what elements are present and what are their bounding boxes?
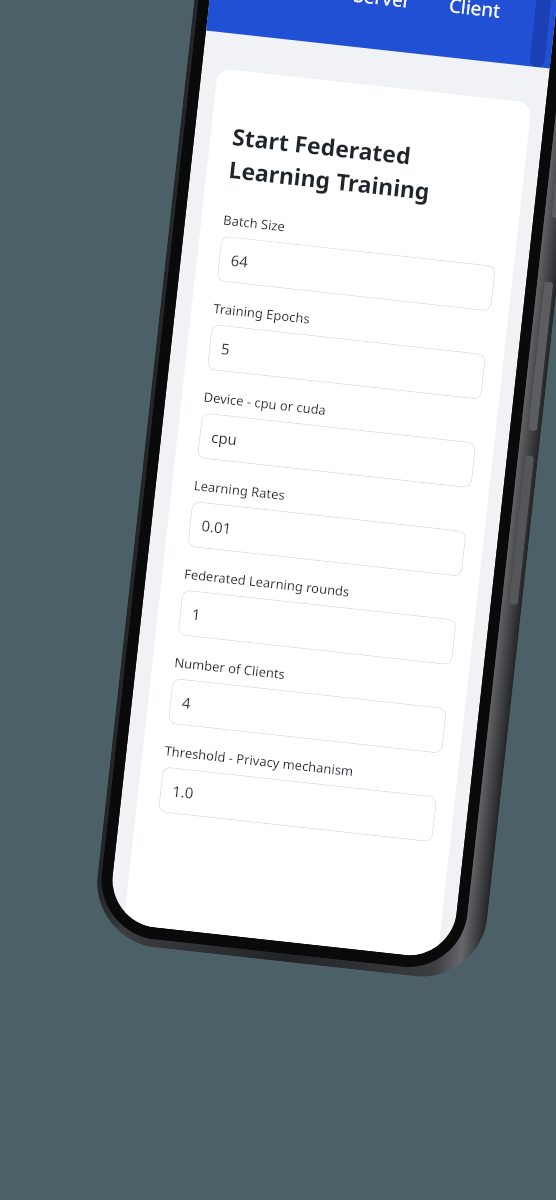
button[interactable]: Server	[347, 0, 418, 23]
staticText: 1.0	[171, 780, 195, 803]
button[interactable]: Client	[443, 0, 507, 33]
staticText: Start Federated Learning Training	[227, 120, 509, 215]
button[interactable]: Federated Learning rounds	[177, 589, 457, 665]
button[interactable]: Batch Size	[216, 235, 496, 311]
staticText: Number of Clients	[173, 653, 287, 683]
button[interactable]: Device - cpu or cuda	[197, 412, 476, 488]
staticText: Client	[448, 0, 502, 24]
staticText: 4	[181, 692, 192, 713]
staticText: Threshold - Privacy mechanism	[164, 741, 354, 780]
staticText: Server	[352, 0, 413, 14]
button[interactable]: Number of Clients	[168, 678, 447, 754]
button[interactable]: Threshold - Privacy mechanism	[158, 766, 437, 842]
staticText: cpu	[210, 427, 238, 449]
staticText: Device - cpu or cuda	[203, 388, 327, 419]
staticText: Learning Rates	[193, 476, 286, 504]
staticText: 1	[191, 604, 202, 624]
staticText: Batch Size	[222, 211, 287, 235]
staticText: 5	[220, 338, 231, 359]
staticText: 64	[230, 250, 250, 272]
button[interactable]: Learning Rates	[187, 501, 467, 577]
staticText: Training Epochs	[212, 299, 311, 328]
staticText: 0.01	[200, 515, 232, 538]
button[interactable]: Training Epochs	[207, 324, 486, 400]
staticText: Federated Learning rounds	[183, 564, 351, 601]
button[interactable]: Menu	[529, 0, 555, 68]
